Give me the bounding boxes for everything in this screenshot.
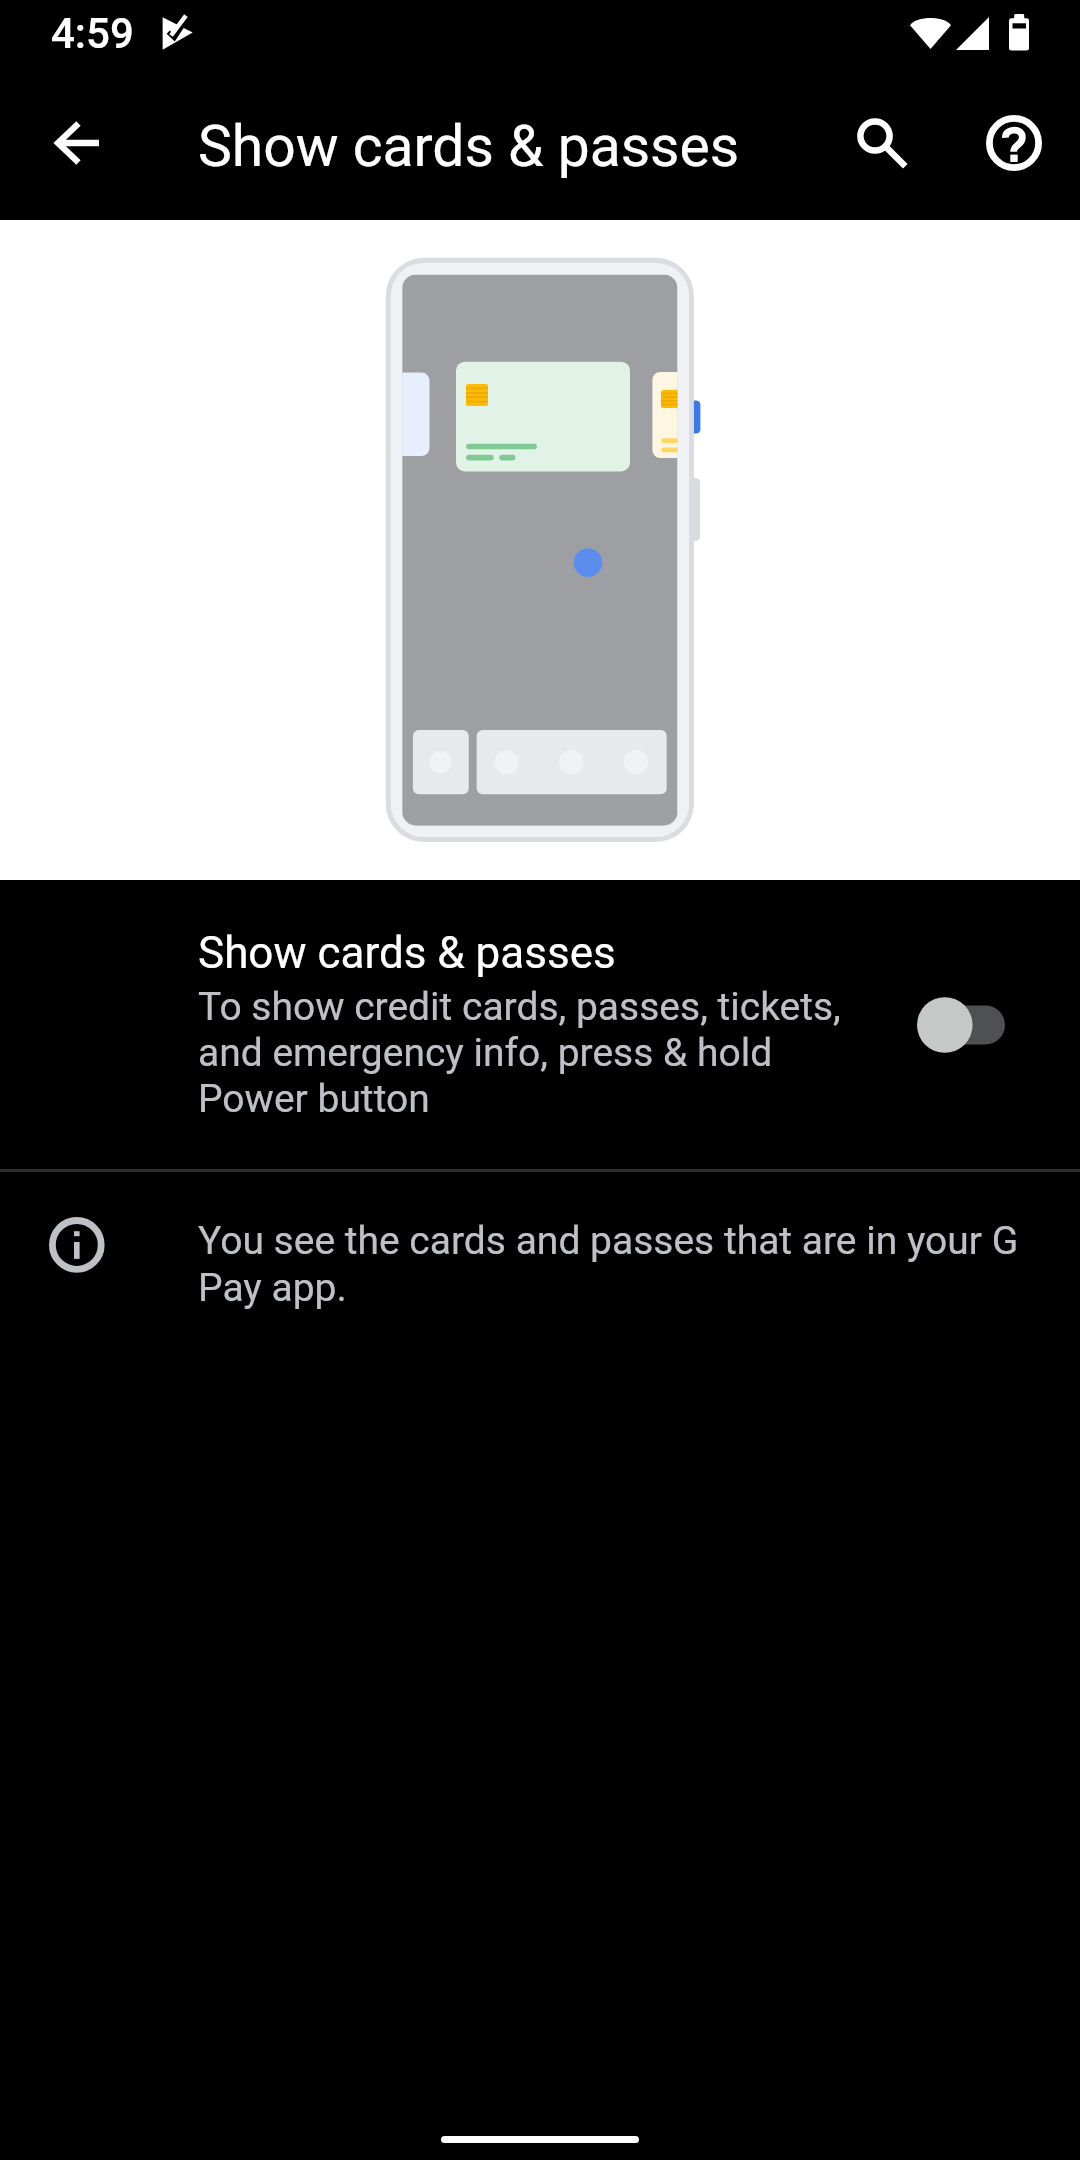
button[interactable]: Show cards & passes <box>0 880 1080 1169</box>
staticText: Show cards & passes <box>198 927 616 979</box>
button[interactable]: Navigate up <box>29 95 125 191</box>
button[interactable]: Help <box>966 95 1062 191</box>
staticText: Show cards & passes <box>198 113 740 180</box>
staticText: You see the cards and passes that are in… <box>198 1218 1036 1310</box>
button[interactable]: Search <box>827 90 923 186</box>
staticText: To show credit cards, passes, tickets, a… <box>198 984 858 1122</box>
staticText: 4:59 <box>51 9 134 58</box>
